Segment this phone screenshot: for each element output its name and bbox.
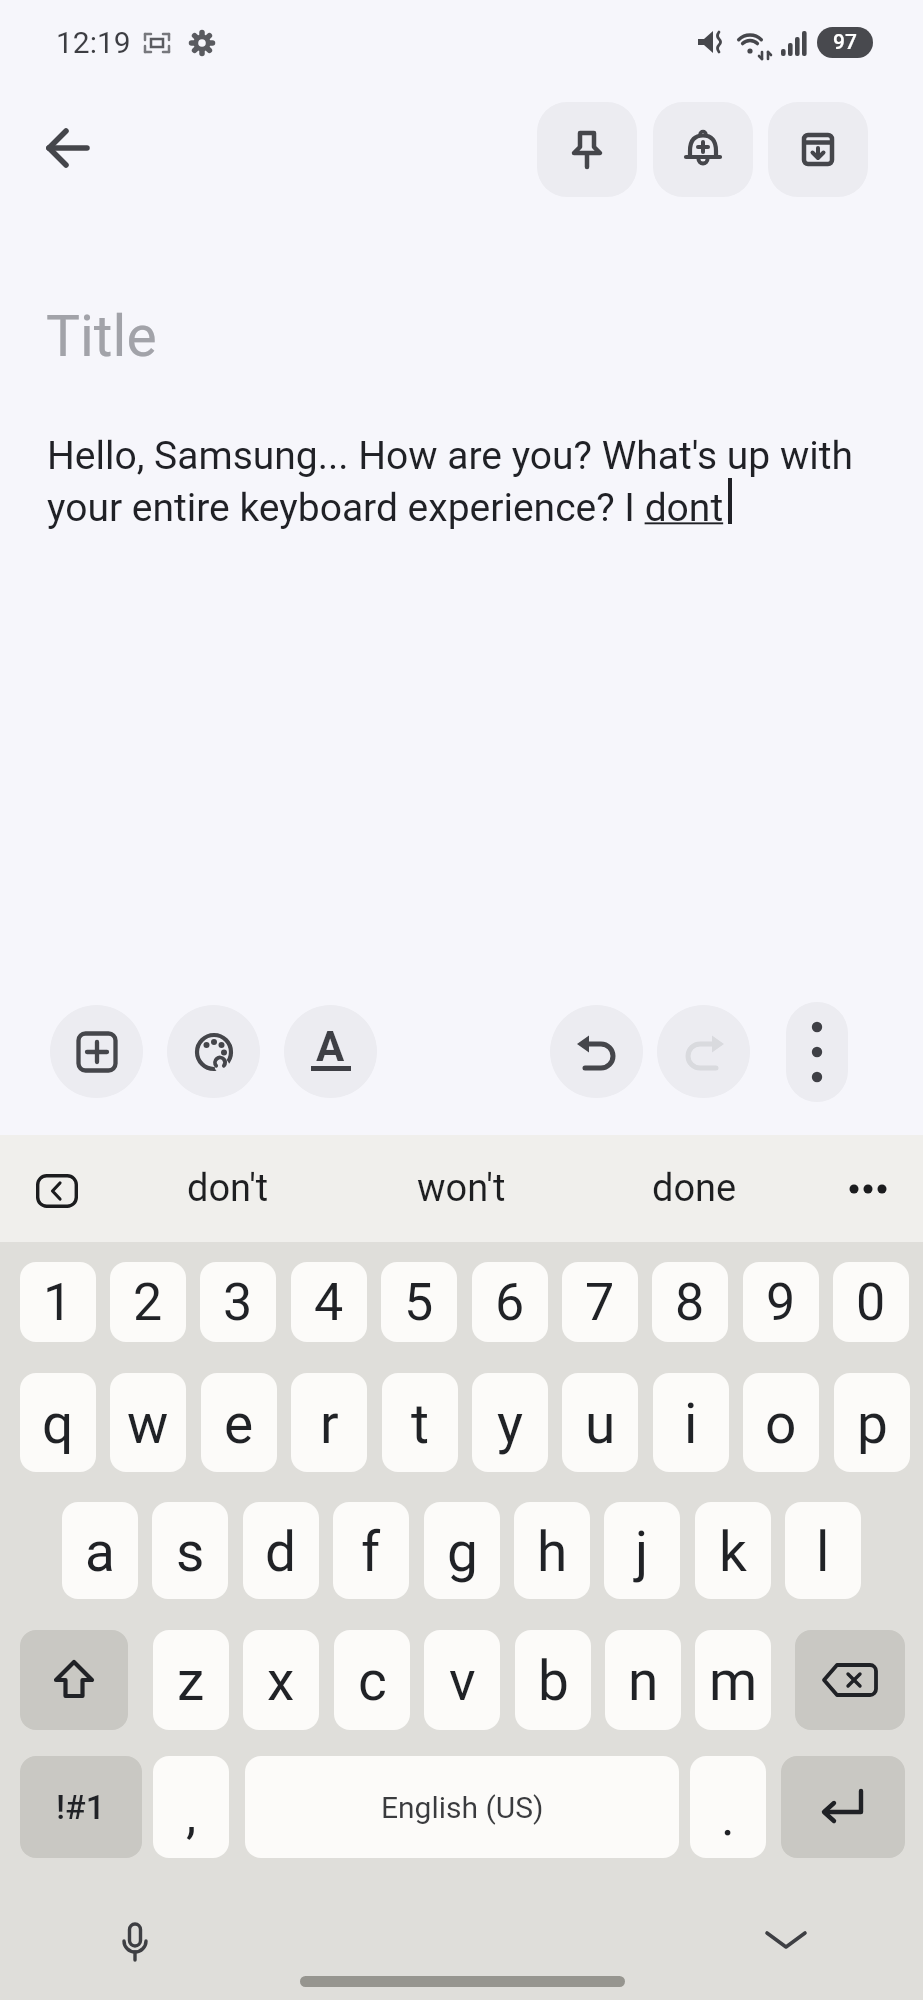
button[interactable]: u [562,1373,638,1472]
staticText: i [684,1392,698,1456]
button[interactable]: q [20,1373,96,1472]
staticText: a [85,1520,115,1584]
button[interactable] [537,102,637,197]
button[interactable]: 4 [291,1262,367,1342]
button[interactable]: , [153,1756,229,1858]
staticText: . [721,1787,735,1848]
button[interactable]: t [382,1373,458,1472]
button[interactable]: !#1 [20,1756,142,1858]
button[interactable] [764,1930,808,1950]
button[interactable] [50,1005,143,1098]
staticText: 7 [585,1272,615,1333]
button[interactable]: l [785,1502,861,1599]
button[interactable]: e [201,1373,277,1472]
button[interactable]: h [514,1502,590,1599]
button[interactable]: 0 [833,1262,909,1342]
button[interactable]: w [110,1373,186,1472]
button[interactable] [653,102,753,197]
button[interactable]: y [472,1373,548,1472]
button[interactable]: x [243,1630,319,1730]
staticText: n [628,1649,659,1713]
button[interactable]: s [152,1502,228,1599]
button[interactable]: v [424,1630,500,1730]
button[interactable]: 5 [381,1262,457,1342]
button[interactable] [768,102,868,197]
staticText: 9 [766,1272,796,1333]
staticText: 97 [833,30,857,55]
button[interactable]: won't [373,1143,549,1234]
button[interactable]: 7 [562,1262,638,1342]
staticText: w [127,1392,169,1456]
button[interactable]: p [834,1373,910,1472]
staticText: 12:19 [56,25,131,60]
staticText: b [538,1649,569,1713]
button[interactable] [36,1174,78,1208]
button[interactable]: 1 [20,1262,96,1342]
staticText: j [635,1520,649,1584]
button[interactable]: 9 [743,1262,819,1342]
button[interactable]: k [695,1502,771,1599]
staticText: m [709,1649,758,1713]
button[interactable]: i [653,1373,729,1472]
button[interactable] [117,1922,153,1968]
button[interactable] [781,1756,905,1858]
staticText: o [765,1392,797,1456]
staticText: g [447,1520,478,1584]
staticText: 2 [133,1272,163,1333]
staticText: won't [417,1166,506,1211]
staticText: c [358,1649,387,1713]
button[interactable]: 6 [472,1262,548,1342]
staticText: d [265,1520,297,1584]
button[interactable]: . [690,1756,766,1858]
staticText: s [176,1520,205,1584]
button[interactable]: don't [140,1143,316,1234]
staticText: x [267,1649,295,1713]
staticText: 5 [404,1272,434,1333]
staticText: Title [46,303,157,370]
staticText: !#1 [56,1787,106,1827]
button[interactable] [20,1630,128,1730]
button[interactable]: 3 [200,1262,276,1342]
staticText: u [585,1392,616,1456]
button[interactable]: 2 [110,1262,186,1342]
staticText: 8 [675,1272,705,1333]
button[interactable]: a [62,1502,138,1599]
button[interactable]: n [605,1630,681,1730]
staticText: h [537,1520,568,1584]
staticText: l [816,1520,830,1584]
staticText: 1 [43,1272,73,1333]
button[interactable]: j [604,1502,680,1599]
staticText: 4 [314,1272,344,1333]
button[interactable]: A [284,1005,377,1098]
staticText: p [857,1392,888,1456]
staticText: y [497,1392,524,1456]
staticText: English (US) [381,1790,544,1825]
staticText: k [719,1520,747,1584]
button[interactable]: r [291,1373,367,1472]
button[interactable] [167,1005,260,1098]
button[interactable] [795,1630,905,1730]
staticText: z [177,1649,205,1713]
button[interactable]: o [743,1373,819,1472]
button[interactable]: d [243,1502,319,1599]
button[interactable]: m [695,1630,771,1730]
button[interactable] [838,1183,898,1195]
button[interactable]: g [424,1502,500,1599]
button[interactable] [46,126,90,170]
button[interactable] [657,1005,750,1098]
button[interactable]: 8 [652,1262,728,1342]
staticText: Hello, Samsung... How are you? What's up… [47,433,892,530]
button[interactable]: f [333,1502,409,1599]
staticText: q [42,1392,74,1456]
staticText: , [186,1785,197,1846]
button[interactable] [550,1005,643,1098]
button[interactable]: done [606,1143,782,1234]
button[interactable]: z [153,1630,229,1730]
button[interactable] [786,1002,848,1102]
button[interactable]: English (US) [245,1756,679,1858]
button[interactable]: c [334,1630,410,1730]
button[interactable]: b [515,1630,591,1730]
staticText: don't [187,1166,269,1211]
staticText: A [316,1022,345,1071]
staticText: v [449,1649,476,1713]
